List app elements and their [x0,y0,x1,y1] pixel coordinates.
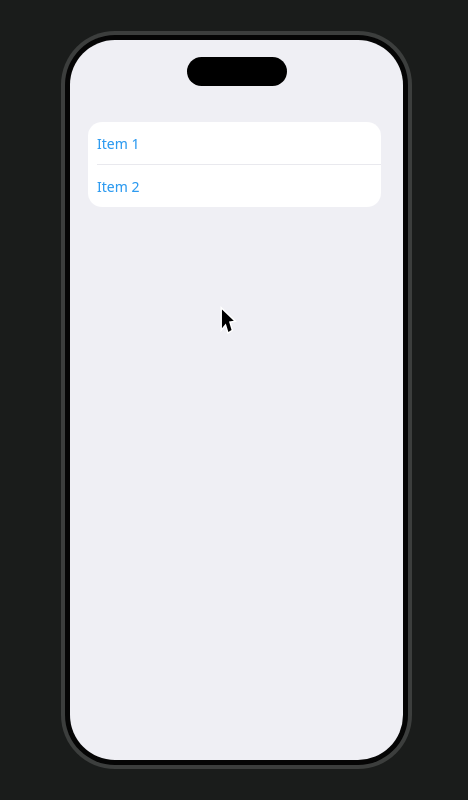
staticText: Item 2 [97,177,140,196]
button[interactable]: Item 2 [88,165,381,207]
button[interactable]: Item 1 [88,122,381,164]
staticText: Item 1 [97,134,140,153]
